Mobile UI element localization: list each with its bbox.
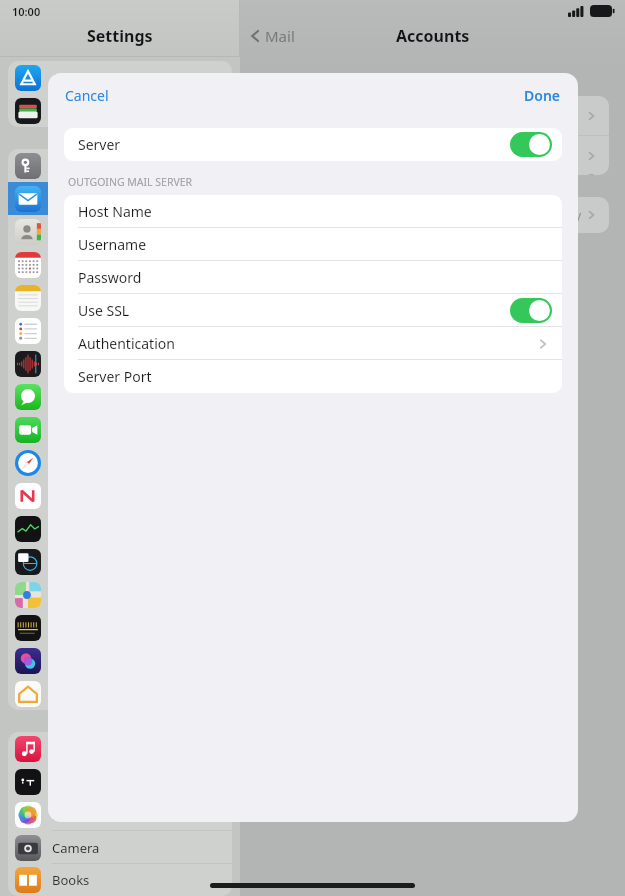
button[interactable]: Toggle on	[510, 298, 552, 323]
button[interactable]: Voice Memos	[8, 347, 232, 380]
staticText: Authentication	[78, 334, 175, 353]
button[interactable]: Shortcuts	[8, 611, 232, 644]
staticText: Server	[78, 135, 121, 154]
button[interactable]: Home	[8, 677, 232, 710]
staticText: Mail	[265, 26, 295, 46]
staticText: Camera	[52, 839, 100, 857]
staticText: Messages	[52, 388, 113, 406]
staticText: 10:00	[12, 4, 41, 19]
other: Back	[248, 27, 262, 45]
staticText: Books	[52, 871, 90, 889]
staticText: Calendar	[52, 256, 107, 274]
button[interactable]: Done	[511, 80, 574, 111]
button[interactable]: Maps	[8, 578, 232, 611]
button[interactable]: Contacts	[8, 215, 232, 248]
button[interactable]: Username	[64, 228, 562, 261]
button[interactable]: Safari	[8, 446, 232, 479]
button[interactable]: TV	[8, 765, 232, 798]
staticText: Notes	[52, 289, 88, 307]
button[interactable]: Toggle on	[510, 132, 552, 157]
button[interactable]: Server	[64, 128, 562, 161]
staticText: Password	[78, 268, 142, 287]
staticText: App Store	[52, 69, 112, 87]
staticText: Mail	[52, 190, 78, 208]
staticText: Username	[78, 235, 147, 254]
button[interactable]: Passwords	[8, 149, 232, 182]
button[interactable]: Cancel	[52, 80, 122, 111]
staticText: Contacts	[52, 223, 106, 241]
button[interactable]: FaceTime	[8, 413, 232, 446]
button[interactable]: Camera	[8, 831, 232, 864]
button[interactable]: Mail	[8, 182, 232, 215]
button[interactable]: Use SSL	[64, 294, 562, 327]
button[interactable]: Server Port	[64, 360, 562, 393]
button[interactable]: Calendar	[8, 248, 232, 281]
staticText: Server Port	[78, 367, 152, 386]
staticText: Voice Memos	[52, 355, 134, 373]
button[interactable]: Books	[8, 864, 232, 896]
button[interactable]: Translate	[8, 545, 232, 578]
button[interactable]: Stocks	[8, 512, 232, 545]
staticText: Reminders	[52, 322, 118, 340]
staticText: Cancel	[65, 86, 109, 105]
staticText: Photos	[52, 806, 95, 824]
staticText: OUTGOING MAIL SERVER	[68, 175, 193, 189]
staticText: Accounts	[396, 25, 470, 47]
staticText: Use SSL	[78, 301, 130, 320]
button[interactable]: News	[8, 479, 232, 512]
staticText: y	[575, 207, 582, 223]
button[interactable]: Back	[248, 26, 295, 46]
staticText: Done	[524, 86, 561, 105]
button[interactable]: Notes	[8, 281, 232, 314]
button[interactable]: Authentication	[64, 327, 562, 360]
button[interactable]: Password	[64, 261, 562, 294]
staticText: Passwords	[52, 157, 118, 175]
staticText: Host Name	[78, 202, 152, 221]
staticText: Settings	[87, 25, 153, 47]
button[interactable]: Music	[8, 732, 232, 765]
button[interactable]: Shortcuts	[8, 644, 232, 677]
button[interactable]: Reminders	[8, 314, 232, 347]
button[interactable]: App Store	[8, 61, 232, 94]
button[interactable]: Photos	[8, 798, 232, 831]
button[interactable]: Host Name	[64, 195, 562, 228]
button[interactable]: Messages	[8, 380, 232, 413]
button[interactable]: Wallet	[8, 94, 232, 127]
